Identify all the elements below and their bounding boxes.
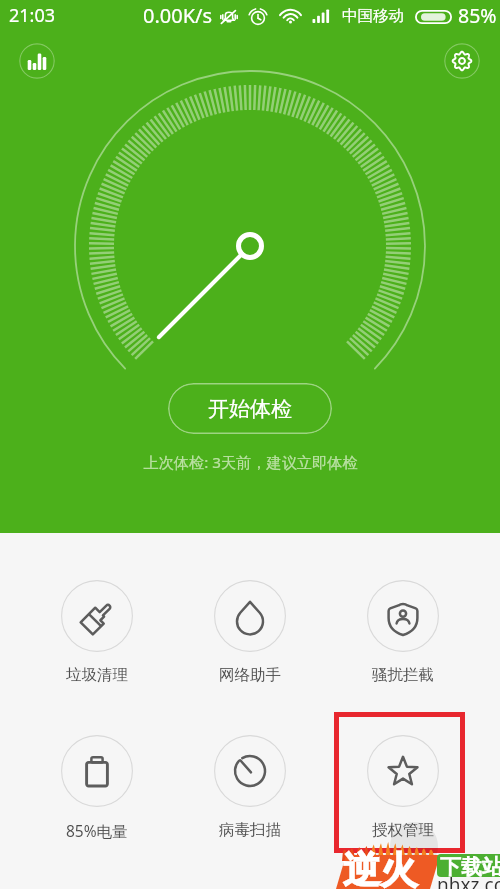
button[interactable]: 85%电量 <box>21 735 173 841</box>
staticText: 0.00K/s <box>143 2 213 29</box>
staticText: 开始体检 <box>208 396 292 422</box>
staticText: 85% <box>458 2 497 29</box>
staticText: 85%电量 <box>66 820 128 841</box>
button[interactable]: Statistics <box>19 43 55 79</box>
staticText: 21:03 <box>9 3 56 28</box>
staticText: 上次体检: 3天前，建议立即体检 <box>143 452 358 473</box>
staticText: 授权管理 <box>372 820 434 840</box>
button[interactable]: 病毒扫描 <box>173 735 326 840</box>
staticText: 骚扰拦截 <box>372 665 434 685</box>
staticText: nhxz.com <box>437 872 500 889</box>
button[interactable]: Settings <box>444 43 480 79</box>
staticText: 病毒扫描 <box>219 820 281 840</box>
staticText: 垃圾清理 <box>66 665 128 685</box>
staticText: 逆火 <box>343 847 417 889</box>
button[interactable]: 授权管理 <box>326 735 479 840</box>
staticText: 下载站 <box>440 854 500 880</box>
staticText: 网络助手 <box>219 665 281 685</box>
button[interactable]: 骚扰拦截 <box>326 580 479 685</box>
button[interactable]: 网络助手 <box>173 580 326 685</box>
staticText: 中国移动 <box>342 6 404 26</box>
button[interactable]: 垃圾清理 <box>21 580 173 685</box>
button[interactable]: 开始体检 <box>168 383 332 434</box>
